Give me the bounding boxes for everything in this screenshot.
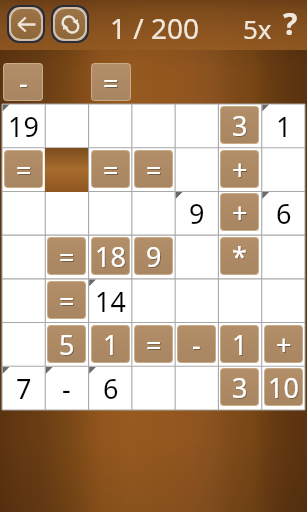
- button[interactable]: +: [265, 326, 302, 362]
- staticText: 5: [60, 327, 76, 362]
- button[interactable]: 3: [221, 107, 258, 143]
- staticText: -: [193, 327, 202, 362]
- button[interactable]: =: [92, 64, 130, 100]
- button[interactable]: -: [4, 64, 42, 100]
- button[interactable]: 6: [89, 366, 132, 410]
- staticText: 3: [232, 107, 248, 143]
- staticText: 9: [146, 238, 162, 274]
- staticText: 18: [96, 239, 127, 274]
- staticText: +: [277, 327, 293, 362]
- staticText: 7: [16, 370, 32, 407]
- staticText: =: [146, 326, 162, 362]
- staticText: *: [232, 238, 247, 274]
- staticText: 18: [95, 238, 126, 274]
- staticText: =: [17, 152, 33, 187]
- staticText: ?: [283, 3, 298, 43]
- button[interactable]: *: [221, 238, 258, 274]
- button[interactable]: 9: [135, 238, 172, 274]
- button[interactable]: 18: [92, 238, 129, 274]
- staticText: 6: [276, 195, 292, 232]
- button[interactable]: =: [48, 282, 85, 318]
- button[interactable]: 1: [262, 104, 305, 148]
- staticText: 5x: [243, 11, 272, 46]
- button[interactable]: +: [221, 151, 258, 187]
- staticText: =: [147, 327, 163, 362]
- button[interactable]: =: [135, 326, 172, 362]
- staticText: +: [233, 152, 249, 187]
- button[interactable]: 1: [92, 326, 129, 362]
- staticText: 1: [276, 108, 292, 145]
- staticText: +: [232, 194, 248, 230]
- staticText: 6: [103, 370, 119, 407]
- staticText: 10: [269, 370, 300, 405]
- staticText: 9: [147, 239, 163, 274]
- button[interactable]: 6: [262, 191, 305, 235]
- staticText: =: [146, 151, 162, 187]
- staticText: -: [62, 370, 71, 407]
- staticText: 5: [59, 326, 75, 362]
- button[interactable]: =: [135, 151, 172, 187]
- button[interactable]: [45, 148, 88, 192]
- staticText: =: [103, 64, 119, 100]
- button[interactable]: -: [45, 366, 88, 410]
- staticText: =: [60, 239, 76, 274]
- button[interactable]: 5: [48, 326, 85, 362]
- staticText: 3: [233, 370, 249, 405]
- staticText: +: [232, 151, 248, 187]
- staticText: 3: [232, 369, 248, 405]
- staticText: =: [16, 151, 32, 187]
- staticText: 1: [103, 326, 119, 362]
- button[interactable]: 3: [221, 369, 258, 405]
- button[interactable]: Help: [278, 3, 302, 43]
- staticText: =: [103, 151, 119, 187]
- staticText: 1: [232, 326, 248, 362]
- staticText: 19: [8, 108, 39, 145]
- button[interactable]: 1: [221, 326, 258, 362]
- button[interactable]: 7: [2, 366, 45, 410]
- staticText: +: [233, 195, 249, 230]
- button[interactable]: -: [178, 326, 215, 362]
- staticText: -: [19, 64, 28, 100]
- staticText: 9: [189, 195, 205, 232]
- button[interactable]: =: [92, 151, 129, 187]
- staticText: =: [147, 152, 163, 187]
- staticText: =: [59, 238, 75, 274]
- staticText: =: [104, 65, 120, 100]
- staticText: 1: [233, 327, 249, 362]
- staticText: =: [60, 283, 76, 318]
- staticText: *: [233, 239, 248, 274]
- button[interactable]: +: [221, 194, 258, 230]
- button[interactable]: 19: [2, 104, 45, 148]
- button[interactable]: 14: [89, 279, 132, 323]
- button[interactable]: Restart: [55, 9, 85, 39]
- staticText: -: [20, 65, 29, 100]
- button[interactable]: =: [5, 151, 42, 187]
- staticText: =: [104, 152, 120, 187]
- staticText: 1: [104, 327, 120, 362]
- staticText: +: [276, 326, 292, 362]
- button[interactable]: =: [48, 238, 85, 274]
- staticText: 14: [95, 283, 126, 320]
- button[interactable]: 9: [175, 191, 218, 235]
- staticText: 3: [233, 108, 249, 143]
- staticText: 1 / 200: [110, 9, 200, 47]
- staticText: 10: [268, 369, 299, 405]
- staticText: =: [59, 282, 75, 318]
- button[interactable]: 10: [265, 369, 302, 405]
- staticText: -: [192, 326, 201, 362]
- button[interactable]: Back: [11, 9, 41, 39]
